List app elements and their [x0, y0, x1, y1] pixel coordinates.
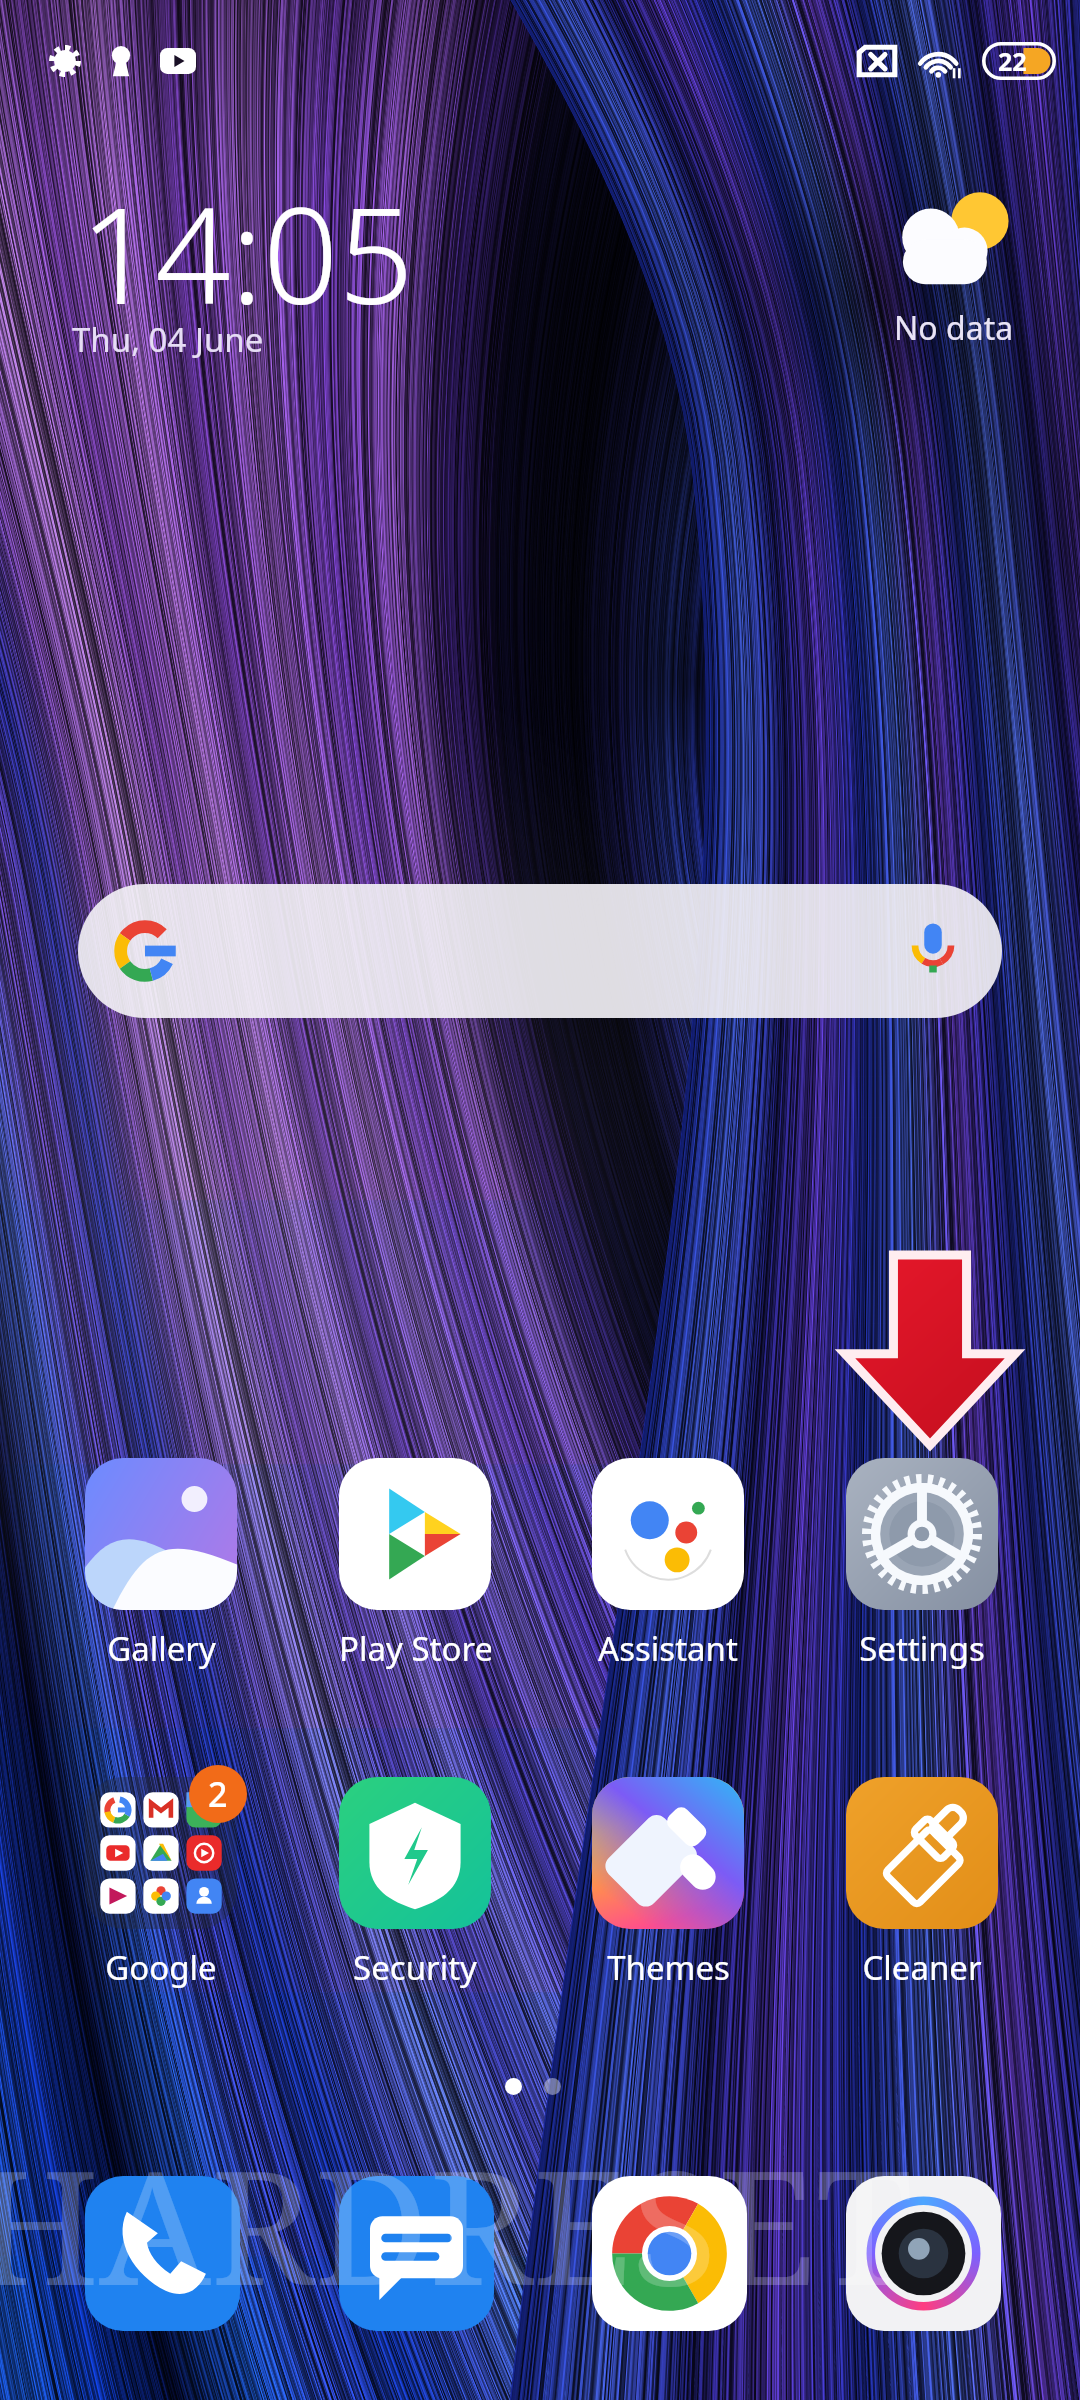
button[interactable]: Cleaner — [846, 1777, 998, 1990]
button[interactable]: 2 — [85, 1777, 237, 1990]
button[interactable]: Weather, No data — [876, 188, 1032, 350]
staticText: Play Store — [339, 1626, 491, 1671]
staticText: 22 — [998, 44, 1027, 78]
staticText: 2 — [208, 1771, 228, 1817]
staticText: HARDRESET — [0, 2116, 913, 2331]
staticText: 14:05 — [80, 163, 414, 343]
button[interactable]: Chrome — [592, 2176, 747, 2331]
button[interactable]: Page 2 — [544, 2078, 561, 2095]
button[interactable]: Gallery — [85, 1458, 237, 1671]
button[interactable]: Page 1 — [505, 2078, 522, 2095]
button[interactable]: 14:05 — [80, 163, 414, 388]
staticText: Google — [105, 1945, 217, 1990]
staticText: Security — [353, 1945, 477, 1990]
staticText: Assistant — [598, 1626, 738, 1671]
button[interactable]: Assistant — [592, 1458, 744, 1671]
button[interactable]: Voice search — [890, 906, 976, 992]
staticText: Settings — [859, 1626, 985, 1671]
staticText: Thu, 04 June — [72, 317, 264, 362]
button[interactable]: Messages — [339, 2176, 494, 2331]
staticText: Themes — [607, 1945, 730, 1990]
staticText: No data — [894, 306, 1014, 350]
button[interactable]: Google search — [78, 884, 1002, 1018]
button[interactable]: Security — [339, 1777, 491, 1990]
staticText: Cleaner — [862, 1945, 982, 1990]
button[interactable]: Play Store — [339, 1458, 491, 1671]
button[interactable]: Camera — [846, 2176, 1001, 2331]
button[interactable]: Themes — [592, 1777, 744, 1990]
button[interactable]: Settings — [846, 1458, 998, 1671]
staticText: Gallery — [107, 1626, 216, 1671]
button[interactable]: Phone — [85, 2176, 240, 2331]
